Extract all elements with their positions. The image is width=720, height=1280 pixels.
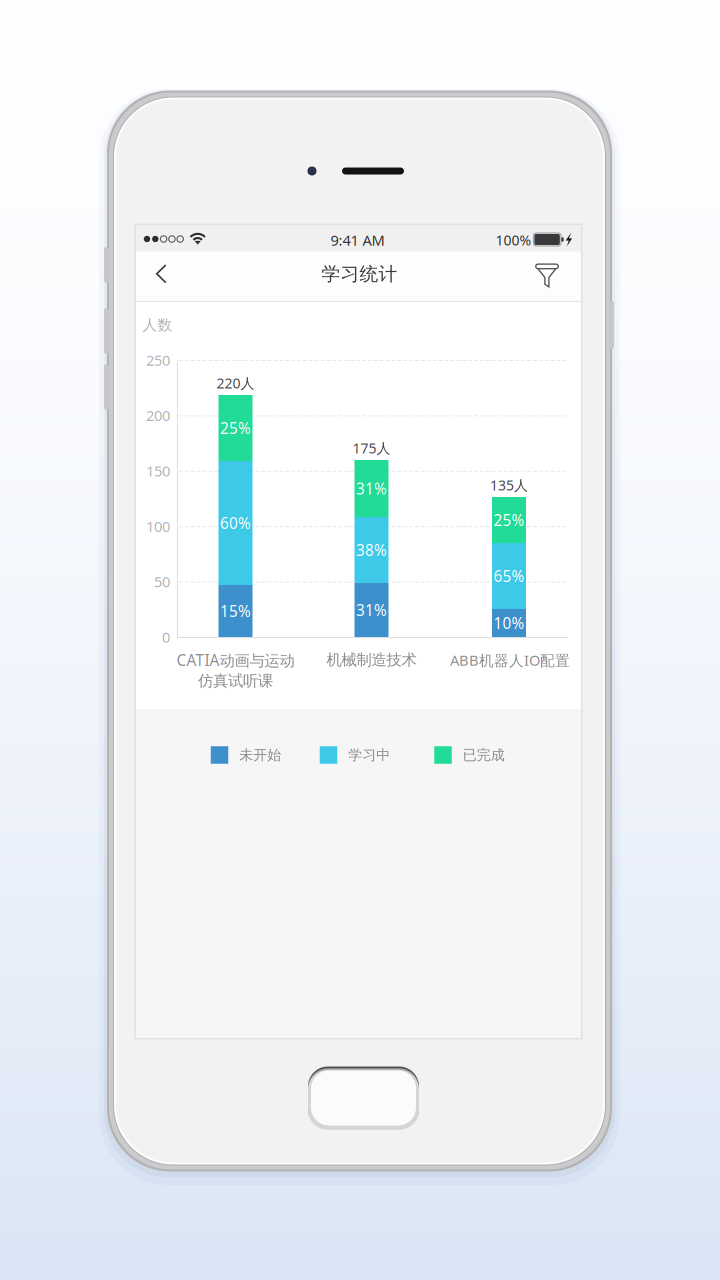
staticText: 38%: [356, 540, 387, 560]
staticText: 学习中: [348, 746, 390, 764]
staticText: 100%: [495, 230, 531, 250]
staticText: 100: [146, 516, 170, 536]
staticText: 9:41 AM: [330, 230, 384, 250]
staticText: 学习统计: [321, 262, 397, 286]
staticText: 31%: [356, 600, 387, 620]
button[interactable]: 已完成: [434, 746, 505, 764]
staticText: 0: [162, 627, 170, 647]
staticText: 机械制造技术: [326, 650, 416, 670]
staticText: 25%: [220, 418, 251, 438]
staticText: 60%: [220, 513, 251, 533]
staticText: 65%: [493, 566, 524, 586]
staticText: 220人: [216, 373, 254, 393]
staticText: 31%: [356, 478, 387, 499]
staticText: CATIA动画与运动: [176, 649, 294, 670]
staticText: 10%: [493, 613, 524, 633]
staticText: 175人: [352, 438, 390, 458]
staticText: 人数: [142, 316, 172, 334]
staticText: 135人: [490, 475, 528, 495]
staticText: 已完成: [463, 746, 505, 764]
staticText: 200: [146, 405, 170, 425]
staticText: 未开始: [239, 746, 281, 764]
button[interactable]: 未开始: [211, 746, 281, 764]
button[interactable]: Back: [138, 252, 184, 296]
staticText: 仿真试听课: [198, 671, 273, 691]
staticText: 50: [154, 572, 170, 592]
button[interactable]: Filter: [524, 252, 570, 296]
staticText: 15%: [220, 601, 251, 621]
staticText: 150: [146, 461, 170, 481]
staticText: ABB机器人IO配置: [450, 650, 570, 670]
staticText: 250: [146, 350, 170, 370]
button[interactable]: 学习中: [320, 746, 390, 764]
staticText: 25%: [493, 510, 524, 530]
